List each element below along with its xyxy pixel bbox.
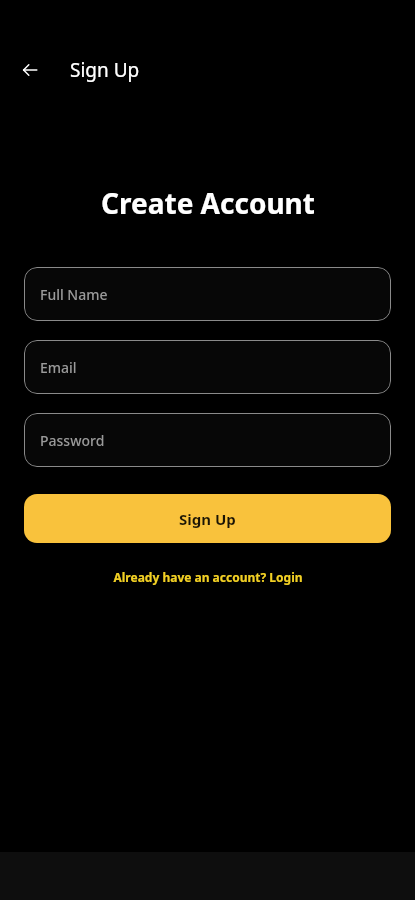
- staticText: Create Account: [101, 184, 315, 222]
- button[interactable]: Password: [24, 413, 391, 467]
- button[interactable]: Sign Up: [24, 494, 391, 543]
- button[interactable]: Already have an account? Login: [105, 565, 311, 589]
- staticText: Sign Up: [179, 509, 236, 529]
- button[interactable]: Full Name: [24, 267, 391, 321]
- staticText: Email: [40, 358, 77, 377]
- button[interactable]: Email: [24, 340, 391, 394]
- staticText: Sign Up: [70, 57, 140, 83]
- staticText: Already have an account? Login: [113, 569, 303, 585]
- staticText: Password: [40, 431, 105, 450]
- button[interactable]: Back: [12, 52, 48, 88]
- staticText: Full Name: [40, 285, 108, 304]
